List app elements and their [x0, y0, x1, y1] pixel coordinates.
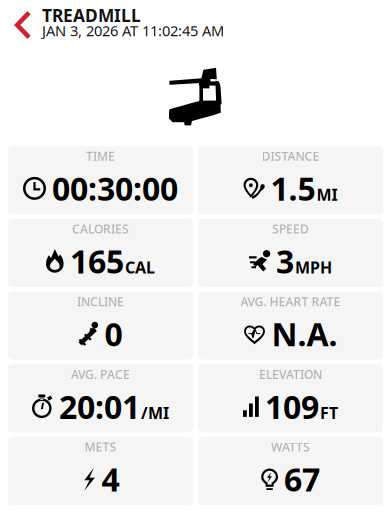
staticText: 00:30:00: [52, 167, 178, 210]
staticText: 1.5: [270, 167, 315, 210]
staticText: CAL: [125, 257, 155, 278]
button[interactable]: Back: [0, 0, 42, 45]
staticText: SPEED: [272, 221, 309, 237]
staticText: ELEVATION: [259, 366, 322, 382]
staticText: CALORIES: [72, 221, 129, 237]
staticText: AVG. PACE: [71, 366, 130, 382]
staticText: JAN 3, 2026 AT 11:02:45 AM: [42, 21, 224, 40]
button[interactable]: AVG. PACE: [8, 364, 193, 432]
button[interactable]: WATTS: [198, 437, 383, 505]
staticText: INCLINE: [77, 294, 124, 309]
staticText: TREADMILL: [42, 4, 141, 27]
button[interactable]: AVG. HEART RATE: [198, 292, 383, 360]
staticText: 20:01: [59, 385, 140, 428]
staticText: 67: [284, 458, 320, 500]
staticText: 3: [276, 240, 294, 282]
button[interactable]: INCLINE: [8, 292, 193, 360]
button[interactable]: METS: [8, 437, 193, 505]
staticText: 0: [104, 312, 122, 355]
staticText: MPH: [295, 257, 332, 278]
staticText: 109: [265, 385, 319, 428]
staticText: METS: [84, 439, 116, 455]
button[interactable]: CALORIES: [8, 219, 193, 287]
button[interactable]: DISTANCE: [198, 146, 383, 214]
staticText: 4: [101, 458, 119, 500]
staticText: MI: [316, 184, 337, 205]
staticText: AVG. HEART RATE: [240, 294, 340, 309]
staticText: /MI: [141, 402, 169, 423]
button[interactable]: ELEVATION: [198, 364, 383, 432]
staticText: DISTANCE: [261, 148, 319, 164]
staticText: FT: [320, 402, 338, 423]
staticText: N.A.: [271, 312, 337, 355]
button[interactable]: SPEED: [198, 219, 383, 287]
staticText: 165: [70, 240, 124, 282]
staticText: WATTS: [271, 439, 310, 455]
staticText: TIME: [86, 148, 115, 164]
button[interactable]: TIME: [8, 146, 193, 214]
